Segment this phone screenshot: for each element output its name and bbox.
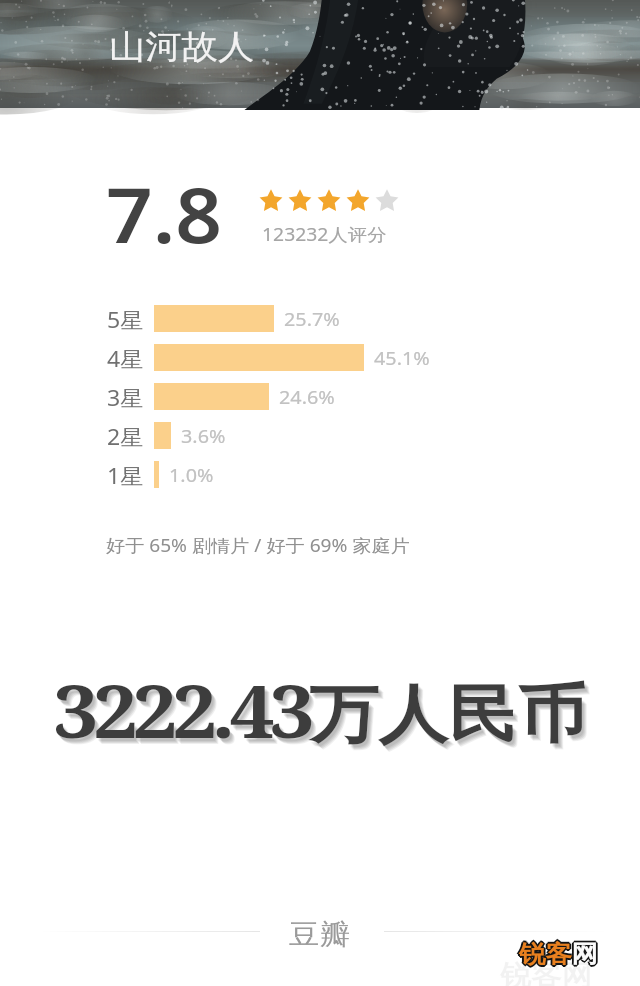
staticText: 5星 bbox=[107, 306, 144, 335]
staticText: 网 bbox=[571, 940, 597, 970]
staticText: 3222.43 bbox=[53, 660, 309, 759]
button[interactable]: Watermark bbox=[519, 939, 591, 969]
staticText: 3222.43 bbox=[56, 664, 312, 763]
staticText: 万人民币 bbox=[312, 679, 589, 758]
staticText: 锐客网 bbox=[500, 958, 592, 986]
staticText: 豆瓣 bbox=[289, 917, 351, 952]
staticText: 网 bbox=[574, 939, 600, 969]
button[interactable]: 4星 bbox=[0, 344, 640, 383]
staticText: 45.1% bbox=[374, 346, 430, 371]
staticText: 锐客 bbox=[519, 941, 572, 971]
staticText: 锐客 bbox=[519, 940, 572, 970]
staticText: 2星 bbox=[107, 423, 144, 452]
staticText: 锐客 bbox=[520, 938, 573, 968]
staticText: 锐客 bbox=[519, 937, 572, 967]
button[interactable]: 2星 bbox=[0, 422, 640, 461]
staticText: 锐客 bbox=[518, 938, 571, 968]
staticText: 万人民币 bbox=[313, 680, 590, 759]
button[interactable]: 5星 bbox=[0, 305, 640, 344]
staticText: 7.8 bbox=[106, 163, 223, 265]
staticText: 网 bbox=[572, 939, 598, 969]
staticText: 山河故人 bbox=[109, 26, 254, 68]
staticText: 好于 65% 剧情片 / 好于 69% 家庭片 bbox=[106, 533, 411, 557]
staticText: 24.6% bbox=[279, 385, 335, 410]
staticText: 3星 bbox=[107, 384, 144, 413]
staticText: 锐客 bbox=[517, 939, 570, 969]
staticText: 1.0% bbox=[169, 463, 214, 488]
staticText: 锐客 bbox=[520, 940, 573, 970]
staticText: 1星 bbox=[107, 462, 144, 491]
staticText: 3222.43 bbox=[55, 663, 311, 762]
staticText: 网 bbox=[572, 940, 598, 970]
staticText: 网 bbox=[571, 938, 597, 968]
staticText: 3222.43 bbox=[58, 666, 314, 765]
staticText: 网 bbox=[571, 939, 597, 969]
staticText: 网 bbox=[573, 938, 599, 968]
staticText: 锐客 bbox=[518, 940, 571, 970]
staticText: 锐客 bbox=[519, 938, 572, 968]
staticText: 网 bbox=[572, 941, 598, 971]
staticText: 25.7% bbox=[284, 307, 340, 332]
button[interactable]: 豆瓣 bbox=[289, 917, 345, 952]
staticText: 网 bbox=[573, 939, 599, 969]
staticText: 3222.43 bbox=[57, 665, 313, 764]
staticText: 123232人评分 bbox=[262, 222, 387, 246]
staticText: 4星 bbox=[107, 345, 144, 374]
button[interactable]: Movie poster bbox=[0, 0, 640, 108]
button[interactable]: 1星 bbox=[0, 461, 640, 500]
staticText: 万人民币 bbox=[314, 681, 591, 760]
staticText: 网 bbox=[570, 939, 596, 969]
staticText: 网 bbox=[572, 937, 598, 967]
staticText: 锐客 bbox=[520, 939, 573, 969]
staticText: 万人民币 bbox=[311, 678, 588, 757]
button[interactable]: 7.8 bbox=[106, 163, 213, 265]
staticText: 网 bbox=[573, 940, 599, 970]
staticText: 网 bbox=[572, 938, 598, 968]
staticText: 锐客 bbox=[519, 939, 572, 969]
staticText: 万人民币 bbox=[309, 675, 586, 754]
staticText: 锐客 bbox=[518, 939, 571, 969]
button[interactable]: 3星 bbox=[0, 383, 640, 422]
staticText: 锐客 bbox=[521, 939, 574, 969]
staticText: 3.6% bbox=[181, 424, 226, 449]
